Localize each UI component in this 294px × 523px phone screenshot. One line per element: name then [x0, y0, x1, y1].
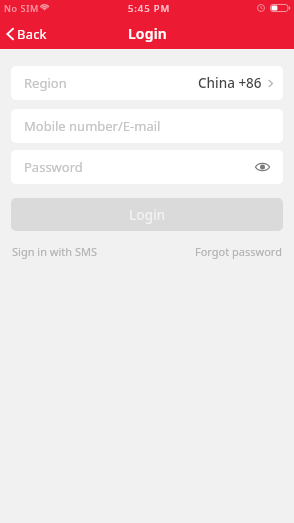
button[interactable]: Password [11, 150, 283, 184]
staticText: Password [24, 158, 83, 176]
staticText: Mobile number/E-mail [24, 117, 161, 135]
staticText: Login [128, 24, 167, 43]
staticText: Back [17, 25, 47, 43]
button[interactable]: Sign in with SMS [10, 242, 99, 261]
button[interactable]: Mobile number/E-mail [11, 109, 283, 143]
staticText: Forgot password [195, 244, 282, 259]
staticText: No SIM [4, 2, 39, 14]
staticText: China +86 [198, 74, 262, 92]
staticText: Region [24, 74, 67, 92]
staticText: Sign in with SMS [12, 244, 97, 259]
button[interactable]: Forgot password [193, 242, 284, 261]
staticText: 5:45 PM [128, 2, 171, 15]
staticText: Login [129, 206, 166, 224]
button[interactable]: Back [0, 20, 55, 48]
button[interactable]: Region [11, 66, 283, 100]
button[interactable]: Show password [253, 156, 275, 178]
